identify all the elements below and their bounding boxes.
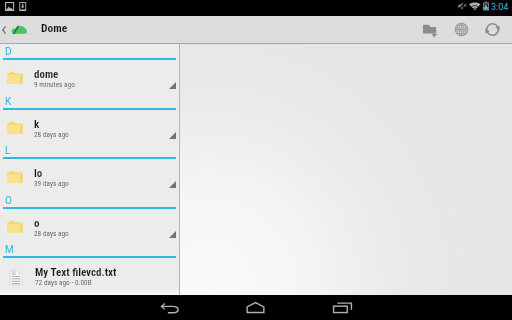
button[interactable]: D [0, 44, 179, 94]
button[interactable]: New folder [415, 16, 446, 43]
button[interactable]: Network [446, 16, 477, 43]
button[interactable]: Up [0, 16, 32, 43]
button[interactable]: Refresh [477, 16, 508, 43]
button[interactable]: K [0, 94, 179, 144]
button[interactable]: Recents [325, 295, 360, 320]
staticText: M [5, 244, 14, 256]
staticText: 9 minutes ago [34, 80, 75, 89]
button[interactable]: M [0, 242, 179, 292]
staticText: k [34, 118, 40, 131]
staticText: 39 days ago [34, 179, 69, 188]
staticText: K [5, 96, 12, 108]
staticText: 28 days ago [34, 130, 69, 139]
staticText: My Text filevcd.txt [35, 266, 117, 279]
staticText: L [5, 145, 11, 157]
staticText: Dome [41, 21, 68, 34]
button[interactable]: L [0, 143, 179, 193]
button[interactable]: Back [153, 295, 188, 320]
staticText: 28 days ago [34, 229, 69, 238]
staticText: lo [34, 167, 43, 180]
button[interactable]: O [0, 193, 179, 243]
button[interactable]: Home [238, 295, 273, 320]
staticText: 3:04 [491, 2, 509, 13]
staticText: D [5, 46, 12, 58]
staticText: o [34, 217, 40, 230]
staticText: 72 days ago - 0.00B [35, 278, 92, 287]
staticText: dome [34, 68, 59, 81]
staticText: O [5, 195, 12, 207]
